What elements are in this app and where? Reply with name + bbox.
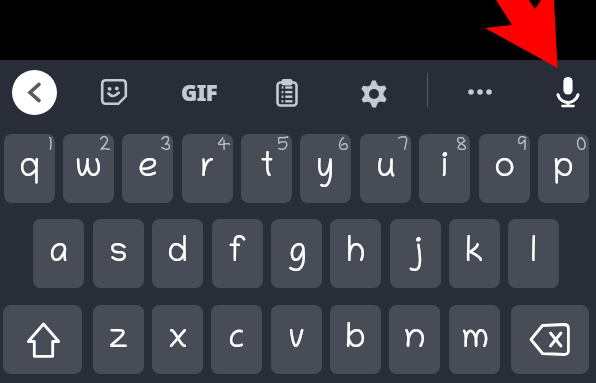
button[interactable]: Emoji <box>92 70 136 114</box>
staticText: x <box>168 321 188 359</box>
button[interactable]: g <box>271 219 322 288</box>
button[interactable]: u <box>360 134 411 203</box>
staticText: 0 <box>576 136 587 157</box>
staticText: k <box>465 235 484 273</box>
staticText: w <box>75 150 102 188</box>
staticText: y <box>317 150 334 188</box>
staticText: 4 <box>217 136 231 157</box>
button[interactable]: r <box>182 134 233 203</box>
staticText: 1 <box>48 136 53 157</box>
button[interactable]: Settings <box>352 72 396 116</box>
staticText: z <box>108 321 129 359</box>
staticText: 5 <box>277 136 290 157</box>
staticText: 8 <box>456 136 468 157</box>
button[interactable]: c <box>211 305 262 374</box>
button[interactable]: b <box>330 305 381 374</box>
staticText: 6 <box>338 136 349 157</box>
staticText: 3 <box>160 136 171 157</box>
button[interactable]: v <box>271 305 322 374</box>
button[interactable]: p <box>538 134 589 203</box>
button[interactable]: o <box>479 134 530 203</box>
staticText: o <box>494 150 515 188</box>
staticText: q <box>19 150 40 188</box>
staticText: GIF <box>181 77 218 107</box>
staticText: e <box>138 150 158 188</box>
staticText: r <box>200 150 215 188</box>
button[interactable]: j <box>390 219 441 288</box>
staticText: d <box>167 235 188 273</box>
button[interactable]: h <box>330 219 381 288</box>
button[interactable]: q <box>4 134 55 203</box>
button[interactable]: y <box>300 134 351 203</box>
button[interactable]: x <box>152 305 203 374</box>
staticText: n <box>403 321 426 359</box>
button[interactable]: Clipboard <box>265 71 309 115</box>
staticText: l <box>530 235 537 273</box>
button[interactable]: Backspace <box>511 305 589 374</box>
button[interactable]: GIF <box>172 76 226 108</box>
button[interactable]: n <box>389 305 440 374</box>
staticText: m <box>461 321 489 359</box>
button[interactable]: Voice input <box>546 70 590 114</box>
staticText: b <box>345 321 366 359</box>
staticText: i <box>441 150 449 188</box>
button[interactable]: m <box>449 305 500 374</box>
staticText: j <box>408 235 423 273</box>
staticText: p <box>553 150 574 188</box>
button[interactable]: k <box>449 219 500 288</box>
staticText: f <box>228 235 247 273</box>
button[interactable]: t <box>241 134 292 203</box>
button[interactable]: e <box>122 134 173 203</box>
staticText: 7 <box>397 136 409 157</box>
button[interactable]: a <box>33 219 84 288</box>
button[interactable]: s <box>93 219 144 288</box>
button[interactable]: f <box>212 219 263 288</box>
staticText: 2 <box>99 136 112 157</box>
button[interactable]: Back <box>12 70 57 115</box>
button[interactable]: More options <box>458 70 502 114</box>
staticText: 9 <box>517 136 528 157</box>
button[interactable]: l <box>508 219 559 288</box>
button[interactable]: z <box>93 305 144 374</box>
staticText: g <box>287 235 307 273</box>
button[interactable]: d <box>152 219 203 288</box>
button[interactable]: i <box>419 134 470 203</box>
staticText: t <box>260 150 274 188</box>
staticText: v <box>288 321 305 359</box>
button[interactable]: Shift <box>3 305 82 374</box>
staticText: c <box>228 321 245 359</box>
staticText: h <box>346 235 366 273</box>
staticText: s <box>109 235 128 273</box>
staticText: a <box>49 235 68 273</box>
button[interactable]: w <box>63 134 114 203</box>
staticText: u <box>376 150 396 188</box>
